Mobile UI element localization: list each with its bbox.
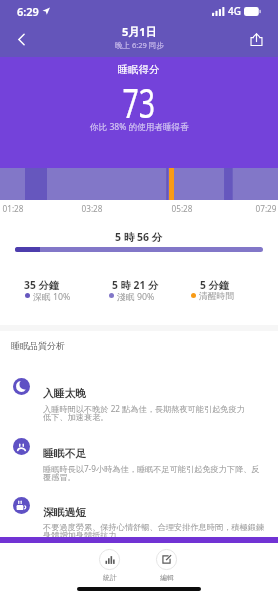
staticText: 4G: [228, 4, 241, 18]
button[interactable]: 深眠過短: [0, 492, 278, 550]
staticText: 5 時 21 分: [112, 278, 159, 292]
staticText: 5 分鐘: [200, 278, 230, 292]
staticText: 不要過度勞累、保持心情舒暢、合理安排作息時間，積極鍛鍊 身體增加身體抵抗力。: [43, 522, 265, 541]
staticText: 睡眠得分: [118, 63, 160, 76]
staticText: 睡眠時長以7-9小時為佳，睡眠不足可能引起免疫力下降、反 覆感冒。: [43, 463, 260, 483]
staticText: 你比 38% 的使用者睡得香: [90, 121, 189, 133]
staticText: 睡眠品質分析: [11, 340, 65, 351]
staticText: 清醒時間: [199, 291, 235, 302]
button[interactable]: 睡眠不足: [0, 433, 278, 491]
button[interactable]: 統計: [99, 549, 120, 582]
staticText: 深眠 10%: [33, 291, 71, 303]
staticText: 入睡時間以不晚於 22 點為佳，長期熬夜可能引起免疫力 低下、加速衰老。: [43, 403, 245, 423]
staticText: 編輯: [160, 573, 174, 582]
staticText: 深眠過短: [43, 506, 87, 520]
staticText: 03:28: [70, 203, 114, 214]
staticText: 5月1日: [122, 24, 157, 39]
staticText: 入睡太晚: [43, 387, 87, 401]
staticText: 35 分鐘: [24, 278, 60, 292]
staticText: 01:28: [0, 203, 35, 214]
staticText: 統計: [103, 573, 117, 582]
staticText: 淺眠 90%: [117, 291, 155, 303]
staticText: 6:29: [17, 4, 39, 19]
staticText: 07:29: [244, 203, 278, 214]
button[interactable]: 編輯: [156, 549, 177, 582]
button[interactable]: Back: [4, 22, 39, 57]
button[interactable]: Share: [239, 22, 274, 57]
button[interactable]: 入睡太晚: [0, 373, 278, 431]
staticText: 5 時 56 分: [115, 230, 163, 244]
staticText: 睡眠不足: [43, 447, 87, 461]
staticText: 05:28: [160, 203, 204, 214]
staticText: 晚上 6:29 同步: [115, 40, 164, 50]
staticText: 73: [122, 76, 155, 130]
